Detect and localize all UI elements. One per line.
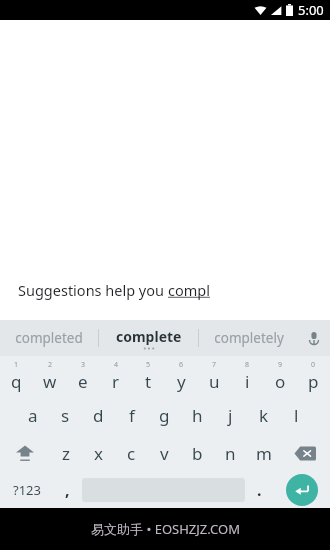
- button[interactable]: ,: [53, 472, 82, 508]
- staticText: i: [245, 370, 250, 393]
- button[interactable]: .: [245, 472, 274, 508]
- button[interactable]: 3: [66, 356, 99, 396]
- staticText: 8: [245, 360, 250, 370]
- staticText: 7: [212, 360, 217, 370]
- button[interactable]: complete: [99, 320, 198, 356]
- staticText: r: [112, 370, 120, 393]
- button[interactable]: x: [82, 434, 115, 472]
- staticText: 易文助手 • EOSHZJZ.COM: [91, 520, 240, 538]
- staticText: j: [228, 404, 233, 427]
- staticText: 1: [14, 360, 19, 370]
- staticText: l: [294, 404, 299, 427]
- staticText: completely: [214, 329, 284, 347]
- staticText: .: [257, 479, 262, 501]
- staticText: c: [127, 442, 136, 465]
- staticText: p: [308, 370, 319, 393]
- button[interactable]: n: [214, 434, 247, 472]
- staticText: q: [11, 370, 22, 393]
- button[interactable]: l: [280, 396, 313, 434]
- button[interactable]: d: [82, 396, 115, 434]
- button[interactable]: v: [148, 434, 181, 472]
- button[interactable]: completely: [199, 320, 298, 356]
- staticText: y: [177, 370, 186, 393]
- button[interactable]: 2: [33, 356, 66, 396]
- button[interactable]: c: [115, 434, 148, 472]
- staticText: a: [28, 404, 38, 427]
- button[interactable]: 9: [264, 356, 297, 396]
- button[interactable]: 6: [165, 356, 198, 396]
- button[interactable]: s: [49, 396, 82, 434]
- staticText: Suggestions help you: [18, 280, 168, 300]
- staticText: 3: [81, 360, 86, 370]
- staticText: 0: [311, 360, 316, 370]
- button[interactable]: m: [247, 434, 280, 472]
- staticText: o: [275, 370, 286, 393]
- button[interactable]: Voice input: [298, 320, 330, 356]
- button[interactable]: z: [49, 434, 82, 472]
- staticText: e: [78, 370, 88, 393]
- button[interactable]: 8: [231, 356, 264, 396]
- button[interactable]: 1: [0, 356, 33, 396]
- staticText: 9: [278, 360, 283, 370]
- staticText: g: [159, 404, 170, 427]
- staticText: compl: [168, 280, 210, 300]
- button[interactable]: 4: [99, 356, 132, 396]
- staticText: 2: [48, 360, 53, 370]
- staticText: h: [192, 404, 203, 427]
- button[interactable]: 7: [198, 356, 231, 396]
- staticText: u: [209, 370, 220, 393]
- button[interactable]: g: [148, 396, 181, 434]
- button[interactable]: k: [247, 396, 280, 434]
- staticText: s: [61, 404, 70, 427]
- staticText: 5: [146, 360, 151, 370]
- button[interactable]: j: [214, 396, 247, 434]
- staticText: m: [256, 442, 272, 465]
- button[interactable]: Enter: [274, 472, 330, 508]
- button[interactable]: 0: [297, 356, 330, 396]
- staticText: 6: [179, 360, 184, 370]
- staticText: completed: [15, 329, 83, 347]
- staticText: complete: [116, 327, 182, 346]
- button[interactable]: h: [181, 396, 214, 434]
- staticText: d: [93, 404, 104, 427]
- staticText: n: [225, 442, 236, 465]
- staticText: t: [145, 370, 152, 393]
- staticText: b: [192, 442, 203, 465]
- button[interactable]: completed: [0, 320, 98, 356]
- button[interactable]: Backspace: [280, 434, 330, 472]
- button[interactable]: 5: [132, 356, 165, 396]
- button[interactable]: f: [115, 396, 148, 434]
- staticText: ,: [65, 479, 70, 501]
- button[interactable]: a: [16, 396, 49, 434]
- button[interactable]: b: [181, 434, 214, 472]
- button[interactable]: Shift: [0, 434, 49, 472]
- staticText: k: [259, 404, 269, 427]
- staticText: f: [129, 404, 135, 427]
- staticText: ?123: [13, 481, 41, 499]
- staticText: 4: [114, 360, 119, 370]
- staticText: w: [43, 370, 57, 393]
- staticText: x: [94, 442, 103, 465]
- staticText: z: [62, 442, 70, 465]
- button[interactable]: ?123: [0, 472, 53, 508]
- staticText: 5:00: [298, 1, 324, 19]
- staticText: v: [160, 442, 169, 465]
